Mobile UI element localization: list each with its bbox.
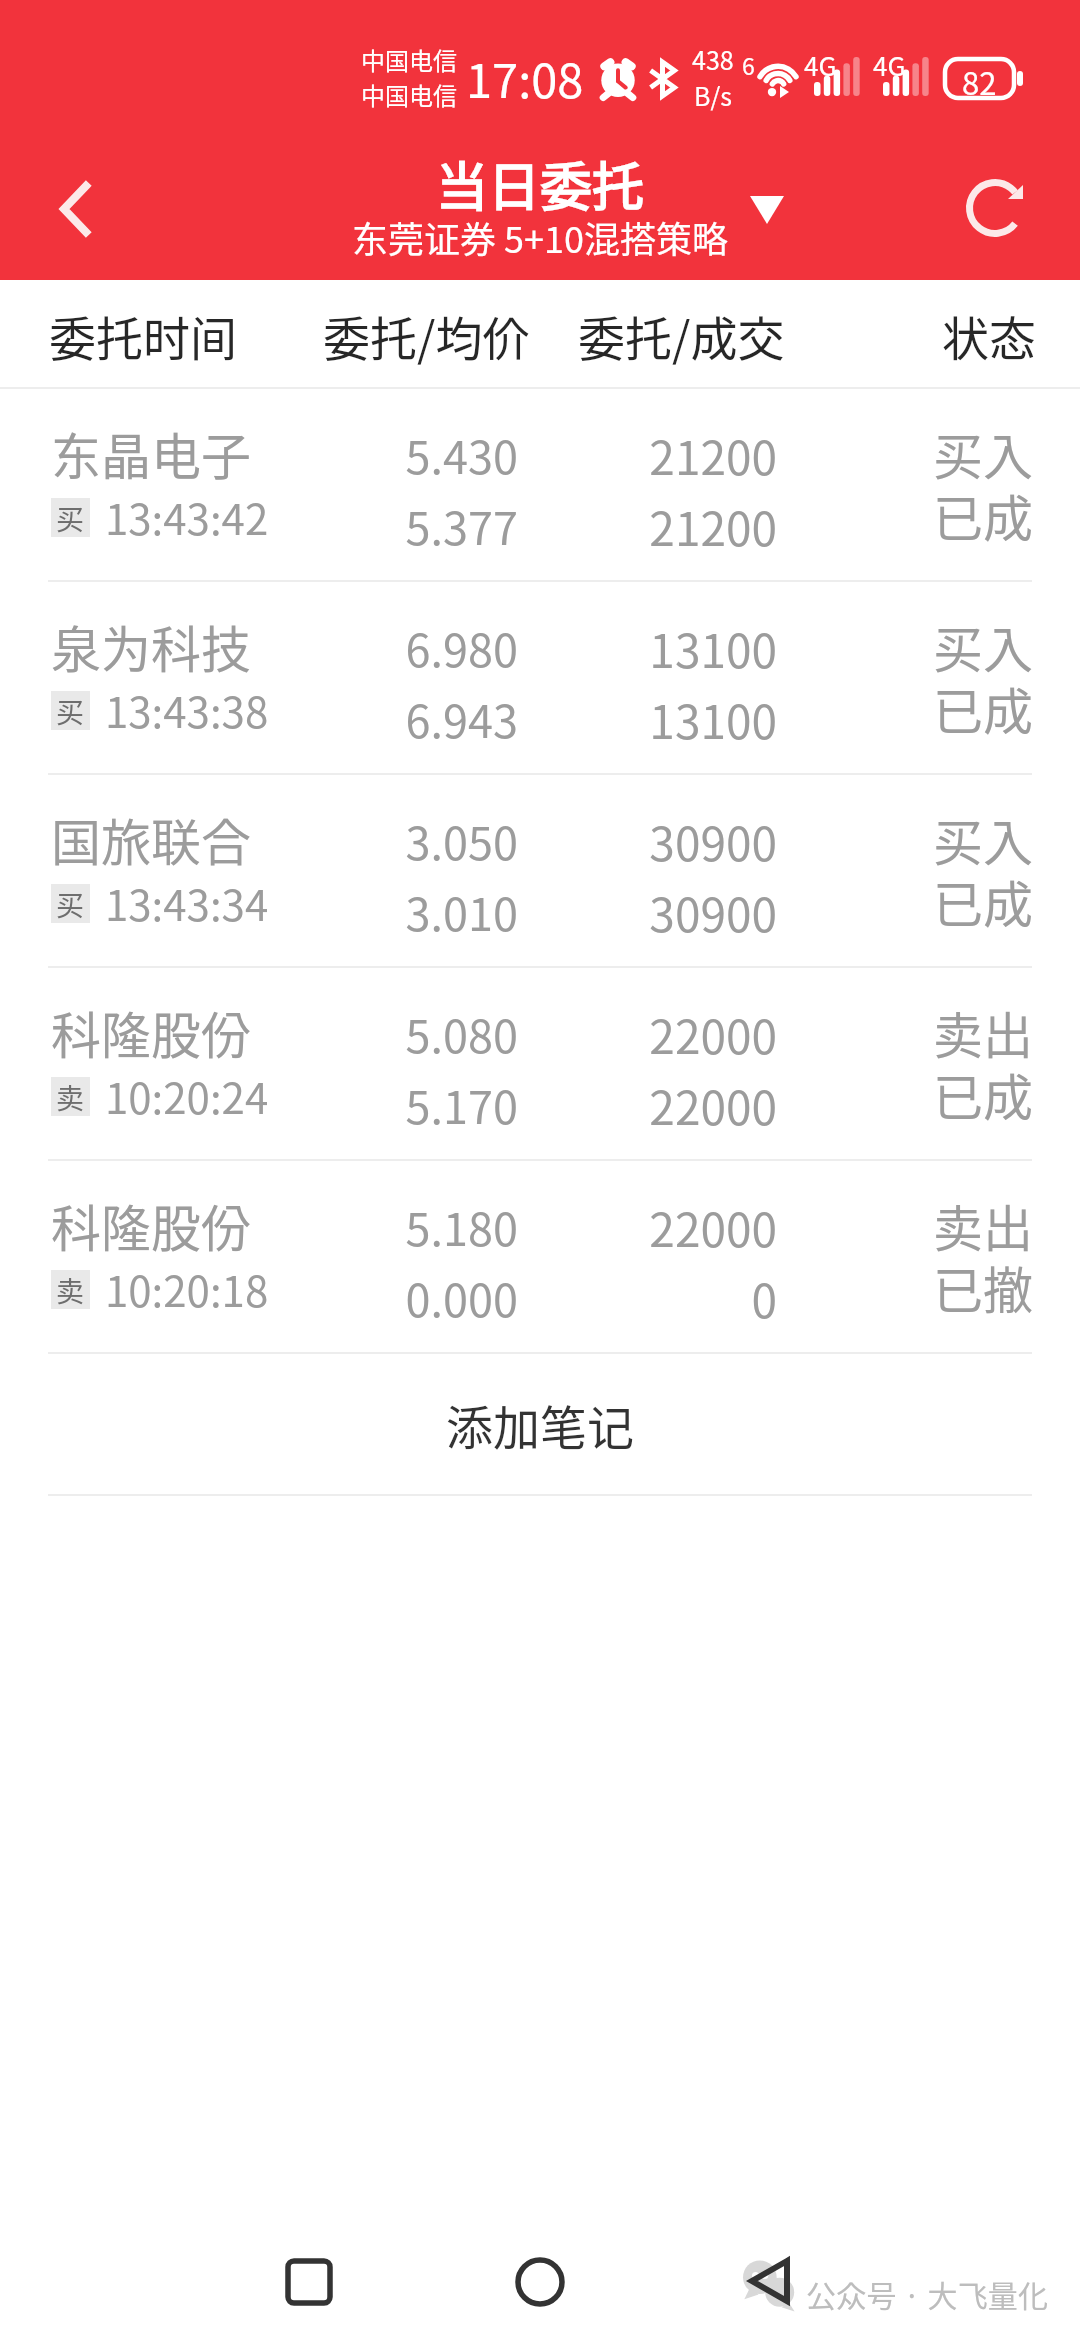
staticText: 东晶电子 xyxy=(51,417,251,489)
staticText: 委托时间 xyxy=(49,301,237,369)
staticText: 已成 xyxy=(933,865,1033,937)
staticText: 13100 xyxy=(649,615,777,682)
staticText: 3.050 xyxy=(405,808,518,873)
staticText: 3.010 xyxy=(405,879,518,944)
staticText: 中国电信 xyxy=(361,42,457,77)
staticText: 已成 xyxy=(933,1058,1033,1130)
staticText: 科隆股份 xyxy=(51,1189,251,1261)
staticText: 委托/均价 xyxy=(323,301,530,369)
staticText: 中国电信 xyxy=(361,77,457,112)
staticText: 21200 xyxy=(649,493,777,560)
staticText: 13:43:42 xyxy=(105,486,269,547)
button[interactable]: Back xyxy=(12,146,138,272)
button[interactable]: Switch strategy xyxy=(722,165,812,255)
staticText: 买 xyxy=(56,691,85,730)
staticText: B/s xyxy=(694,77,732,113)
staticText: 5.080 xyxy=(405,1001,518,1066)
button[interactable]: Refresh xyxy=(940,153,1050,263)
staticText: 买 xyxy=(56,884,85,923)
staticText: 卖出 xyxy=(933,1189,1033,1261)
staticText: 东莞证券 5+10混搭策略 xyxy=(352,211,728,263)
staticText: 已成 xyxy=(933,479,1033,551)
staticText: 买入 xyxy=(933,610,1033,682)
staticText: 6 xyxy=(742,48,755,81)
button[interactable]: 东晶电子 xyxy=(0,389,1080,582)
staticText: 30900 xyxy=(649,808,777,875)
button[interactable]: Recent apps xyxy=(254,2227,364,2337)
staticText: 10:20:18 xyxy=(105,1258,269,1319)
staticText: 添加笔记 xyxy=(446,1390,634,1458)
staticText: 状态 xyxy=(942,301,1036,369)
staticText: 4G xyxy=(873,46,906,84)
staticText: 22000 xyxy=(649,1194,777,1261)
staticText: 21200 xyxy=(649,422,777,489)
staticText: 17:08 xyxy=(466,43,584,111)
button[interactable]: Back xyxy=(714,2226,824,2336)
staticText: 4G xyxy=(804,46,837,84)
button[interactable]: Home xyxy=(485,2227,595,2337)
staticText: 5.430 xyxy=(405,422,518,487)
staticText: 22000 xyxy=(649,1072,777,1139)
staticText: 5.377 xyxy=(405,493,518,558)
staticText: 6.980 xyxy=(405,615,518,680)
staticText: 30900 xyxy=(649,879,777,946)
staticText: 卖 xyxy=(56,1077,85,1116)
button[interactable]: 添加笔记 xyxy=(0,1354,1080,1494)
staticText: 已成 xyxy=(933,672,1033,744)
staticText: 已撤 xyxy=(933,1251,1033,1323)
staticText: 22000 xyxy=(649,1001,777,1068)
staticText: 买入 xyxy=(933,803,1033,875)
staticText: 5.170 xyxy=(405,1072,518,1137)
staticText: 公众号 · 大飞量化 xyxy=(806,2272,1049,2315)
staticText: 国旅联合 xyxy=(51,803,251,875)
staticText: 当日委托 xyxy=(436,146,645,221)
staticText: 6.943 xyxy=(405,686,518,751)
staticText: 买 xyxy=(56,498,85,537)
staticText: 13:43:34 xyxy=(105,872,269,933)
staticText: 82 xyxy=(962,59,997,98)
staticText: 泉为科技 xyxy=(51,610,251,682)
button[interactable]: 泉为科技 xyxy=(0,582,1080,775)
staticText: 13:43:38 xyxy=(105,679,269,740)
staticText: 5.180 xyxy=(405,1194,518,1259)
staticText: 买入 xyxy=(933,417,1033,489)
button[interactable]: 科隆股份 xyxy=(0,968,1080,1161)
staticText: 卖 xyxy=(56,1270,85,1309)
staticText: 438 xyxy=(692,41,734,77)
staticText: 委托/成交 xyxy=(578,301,785,369)
staticText: 0 xyxy=(751,1265,777,1332)
staticText: 0.000 xyxy=(405,1265,518,1330)
button[interactable]: 科隆股份 xyxy=(0,1161,1080,1354)
button[interactable]: 国旅联合 xyxy=(0,775,1080,968)
staticText: 卖出 xyxy=(933,996,1033,1068)
staticText: 10:20:24 xyxy=(105,1065,269,1126)
staticText: 科隆股份 xyxy=(51,996,251,1068)
staticText: 13100 xyxy=(649,686,777,753)
